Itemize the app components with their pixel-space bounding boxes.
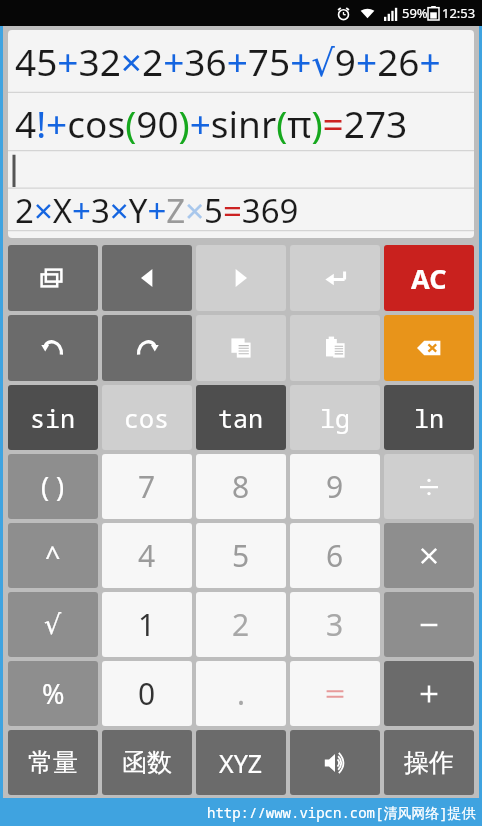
button[interactable]: Backspace	[384, 315, 474, 381]
staticText: 7	[138, 466, 156, 507]
button[interactable]: Move right	[196, 245, 286, 311]
button[interactable]: 操作	[384, 730, 474, 795]
staticText: 函数	[122, 747, 172, 778]
button[interactable]: Minus	[384, 592, 474, 657]
button[interactable]: Redo	[102, 315, 192, 381]
staticText: 45+32×2+36+75+√9+26+	[15, 36, 441, 86]
staticText: 4!+cos(90)+sinr(π)=273	[15, 98, 408, 148]
button[interactable]: 函数	[102, 730, 192, 795]
button[interactable]: 45+32×2+36+75+√9+26+	[8, 30, 474, 238]
button[interactable]: 8	[196, 454, 286, 519]
staticText: ( )	[41, 468, 65, 505]
staticText: √	[44, 609, 62, 640]
staticText: lg	[320, 401, 351, 435]
staticText: sin	[30, 401, 76, 435]
button[interactable]: 5	[196, 523, 286, 588]
button[interactable]: ln	[384, 385, 474, 450]
button[interactable]: 4	[102, 523, 192, 588]
button[interactable]: tan	[196, 385, 286, 450]
button[interactable]: 0	[102, 661, 192, 726]
button[interactable]: cos	[102, 385, 192, 450]
staticText: 59%	[402, 4, 428, 22]
button[interactable]: Copy	[196, 315, 286, 381]
button[interactable]: Plus	[384, 661, 474, 726]
button[interactable]: 7	[102, 454, 192, 519]
button[interactable]: Move left	[102, 245, 192, 311]
staticText: 9	[326, 466, 344, 507]
button[interactable]: .	[196, 661, 286, 726]
staticText: ln	[414, 401, 445, 435]
staticText: .	[237, 673, 246, 714]
button[interactable]: 2	[196, 592, 286, 657]
staticText: 3	[326, 604, 344, 645]
staticText: 5	[232, 535, 250, 576]
button[interactable]: Divide	[384, 454, 474, 519]
button[interactable]: %	[8, 661, 98, 726]
button[interactable]: 9	[290, 454, 380, 519]
staticText: ^	[45, 537, 61, 574]
button[interactable]: Windows	[8, 245, 98, 311]
staticText: XYZ	[219, 746, 263, 780]
staticText: 6	[326, 535, 344, 576]
staticText: 0	[138, 673, 156, 714]
staticText: http://www.vipcn.com[清风网络]提供	[207, 803, 476, 822]
button[interactable]: XYZ	[196, 730, 286, 795]
staticText: AC	[411, 260, 447, 297]
button[interactable]: Enter	[290, 245, 380, 311]
button[interactable]: 6	[290, 523, 380, 588]
button[interactable]: Undo	[8, 315, 98, 381]
staticText: tan	[218, 401, 264, 435]
button[interactable]: Paste	[290, 315, 380, 381]
button[interactable]: ^	[8, 523, 98, 588]
button[interactable]: 1	[102, 592, 192, 657]
staticText: 1	[138, 604, 156, 645]
staticText: 12:53	[442, 4, 476, 22]
staticText: 4	[138, 535, 156, 576]
button[interactable]: 常量	[8, 730, 98, 795]
staticText: 8	[232, 466, 250, 507]
button[interactable]: sin	[8, 385, 98, 450]
button[interactable]: 3	[290, 592, 380, 657]
staticText: 2×X+3×Y+Z×5=369	[15, 188, 299, 233]
staticText: 常量	[28, 747, 78, 778]
staticText: 操作	[404, 747, 454, 778]
button[interactable]: √	[8, 592, 98, 657]
button[interactable]: Multiply	[384, 523, 474, 588]
button[interactable]: Equals	[290, 661, 380, 726]
button[interactable]: lg	[290, 385, 380, 450]
staticText: 2	[232, 604, 250, 645]
button[interactable]: AC	[384, 245, 474, 311]
staticText: cos	[124, 401, 170, 435]
staticText: %	[42, 675, 65, 712]
button[interactable]: ( )	[8, 454, 98, 519]
button[interactable]: Sound	[290, 730, 380, 795]
